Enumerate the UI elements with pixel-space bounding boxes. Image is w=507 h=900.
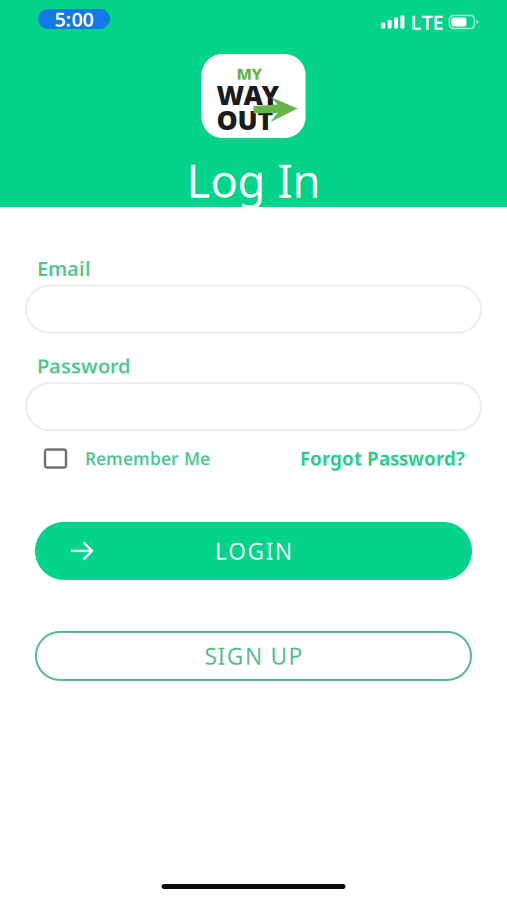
staticText: Email (37, 255, 91, 282)
staticText: G (227, 641, 244, 671)
staticText: N (275, 536, 292, 566)
staticText: 5:00 (54, 6, 93, 32)
staticText: I (266, 536, 274, 566)
staticText: I (218, 641, 226, 671)
staticText: U (270, 641, 287, 671)
staticText: Forgot Password? (300, 446, 465, 471)
staticText: L (215, 536, 227, 566)
button[interactable]: L (26, 522, 481, 580)
staticText: MY (236, 63, 262, 84)
button[interactable]: Forgot Password? (300, 442, 465, 475)
staticText: Password (37, 353, 131, 379)
staticText: G (247, 536, 264, 566)
staticText: OUT (216, 102, 273, 137)
button[interactable]: S (26, 632, 481, 680)
staticText: O (228, 536, 246, 566)
staticText: WAY (216, 77, 279, 112)
staticText: N (245, 641, 262, 671)
button[interactable]: Remember Me (45, 443, 210, 474)
staticText: S (204, 641, 216, 671)
staticText: LTE (410, 9, 443, 35)
staticText: P (289, 641, 303, 671)
staticText: Log In (186, 150, 320, 210)
staticText: Remember Me (85, 447, 210, 470)
